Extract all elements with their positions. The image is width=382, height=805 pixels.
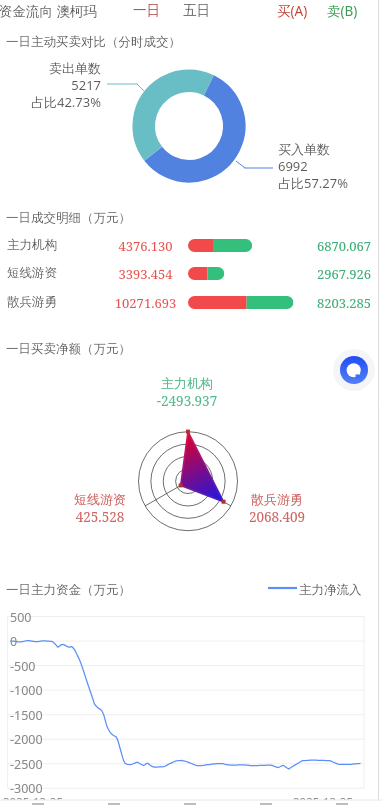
staticText: 主力机构	[7, 237, 57, 253]
button[interactable]: Community	[228, 801, 304, 805]
button[interactable]: Quotes	[76, 801, 152, 805]
button[interactable]: 散兵游勇	[0, 288, 382, 316]
staticText: 500	[10, 609, 32, 626]
staticText: 一日买卖净额（万元）	[6, 341, 131, 357]
staticText: 一日	[133, 2, 160, 19]
staticText: -2500	[10, 756, 43, 773]
staticText: 8203.285	[300, 294, 371, 312]
staticText: 一日主力资金（万元）	[6, 582, 131, 598]
button[interactable]: Customer service chat	[333, 349, 375, 391]
staticText: 2025-12-25	[3, 794, 64, 805]
staticText: 2068.409	[227, 508, 327, 526]
staticText: 2967.926	[300, 265, 371, 283]
staticText: 一日主动买卖对比（分时成交）	[6, 34, 181, 50]
button[interactable]: 买(A)	[277, 2, 308, 20]
staticText: 3393.454	[105, 265, 186, 283]
button[interactable]: 短线游资	[0, 259, 382, 287]
staticText: 2025-12-25	[293, 794, 354, 805]
button[interactable]: 卖(B)	[327, 2, 358, 20]
staticText: 短线游资	[50, 491, 150, 507]
button[interactable]: 主力机构	[0, 231, 382, 259]
staticText: -3000	[10, 780, 43, 797]
staticText: 五日	[183, 2, 210, 19]
staticText: 资金流向 澳柯玛	[0, 2, 98, 20]
staticText: -2000	[10, 731, 43, 748]
staticText: 425.528	[50, 508, 150, 526]
button[interactable]: Mine	[304, 801, 380, 805]
button[interactable]: 五日	[183, 2, 210, 19]
staticText: 4376.130	[105, 237, 186, 255]
staticText: 卖出单数 5217 占比42.73%	[7, 60, 101, 111]
staticText: 买入单数 6992 占比57.27%	[278, 141, 349, 192]
staticText: -500	[10, 658, 36, 675]
staticText: 10271.693	[105, 294, 186, 312]
button[interactable]: 资金流向 澳柯玛	[0, 2, 98, 20]
button[interactable]: Home	[0, 801, 76, 805]
staticText: 0	[10, 633, 18, 650]
staticText: 买(A)	[277, 2, 308, 20]
staticText: 散兵游勇	[227, 491, 327, 507]
staticText: 散兵游勇	[7, 294, 57, 310]
staticText: 主力机构	[137, 375, 237, 391]
staticText: 主力净流入	[299, 582, 362, 598]
staticText: -2493.937	[137, 392, 237, 410]
staticText: 6870.067	[300, 237, 371, 255]
staticText: 一日成交明细（万元）	[6, 210, 131, 226]
button[interactable]: Trade	[152, 801, 228, 805]
staticText: -1500	[10, 707, 43, 724]
staticText: -1000	[10, 682, 43, 699]
staticText: 卖(B)	[327, 2, 358, 20]
button[interactable]: 一日	[133, 2, 160, 19]
staticText: 短线游资	[7, 265, 57, 281]
